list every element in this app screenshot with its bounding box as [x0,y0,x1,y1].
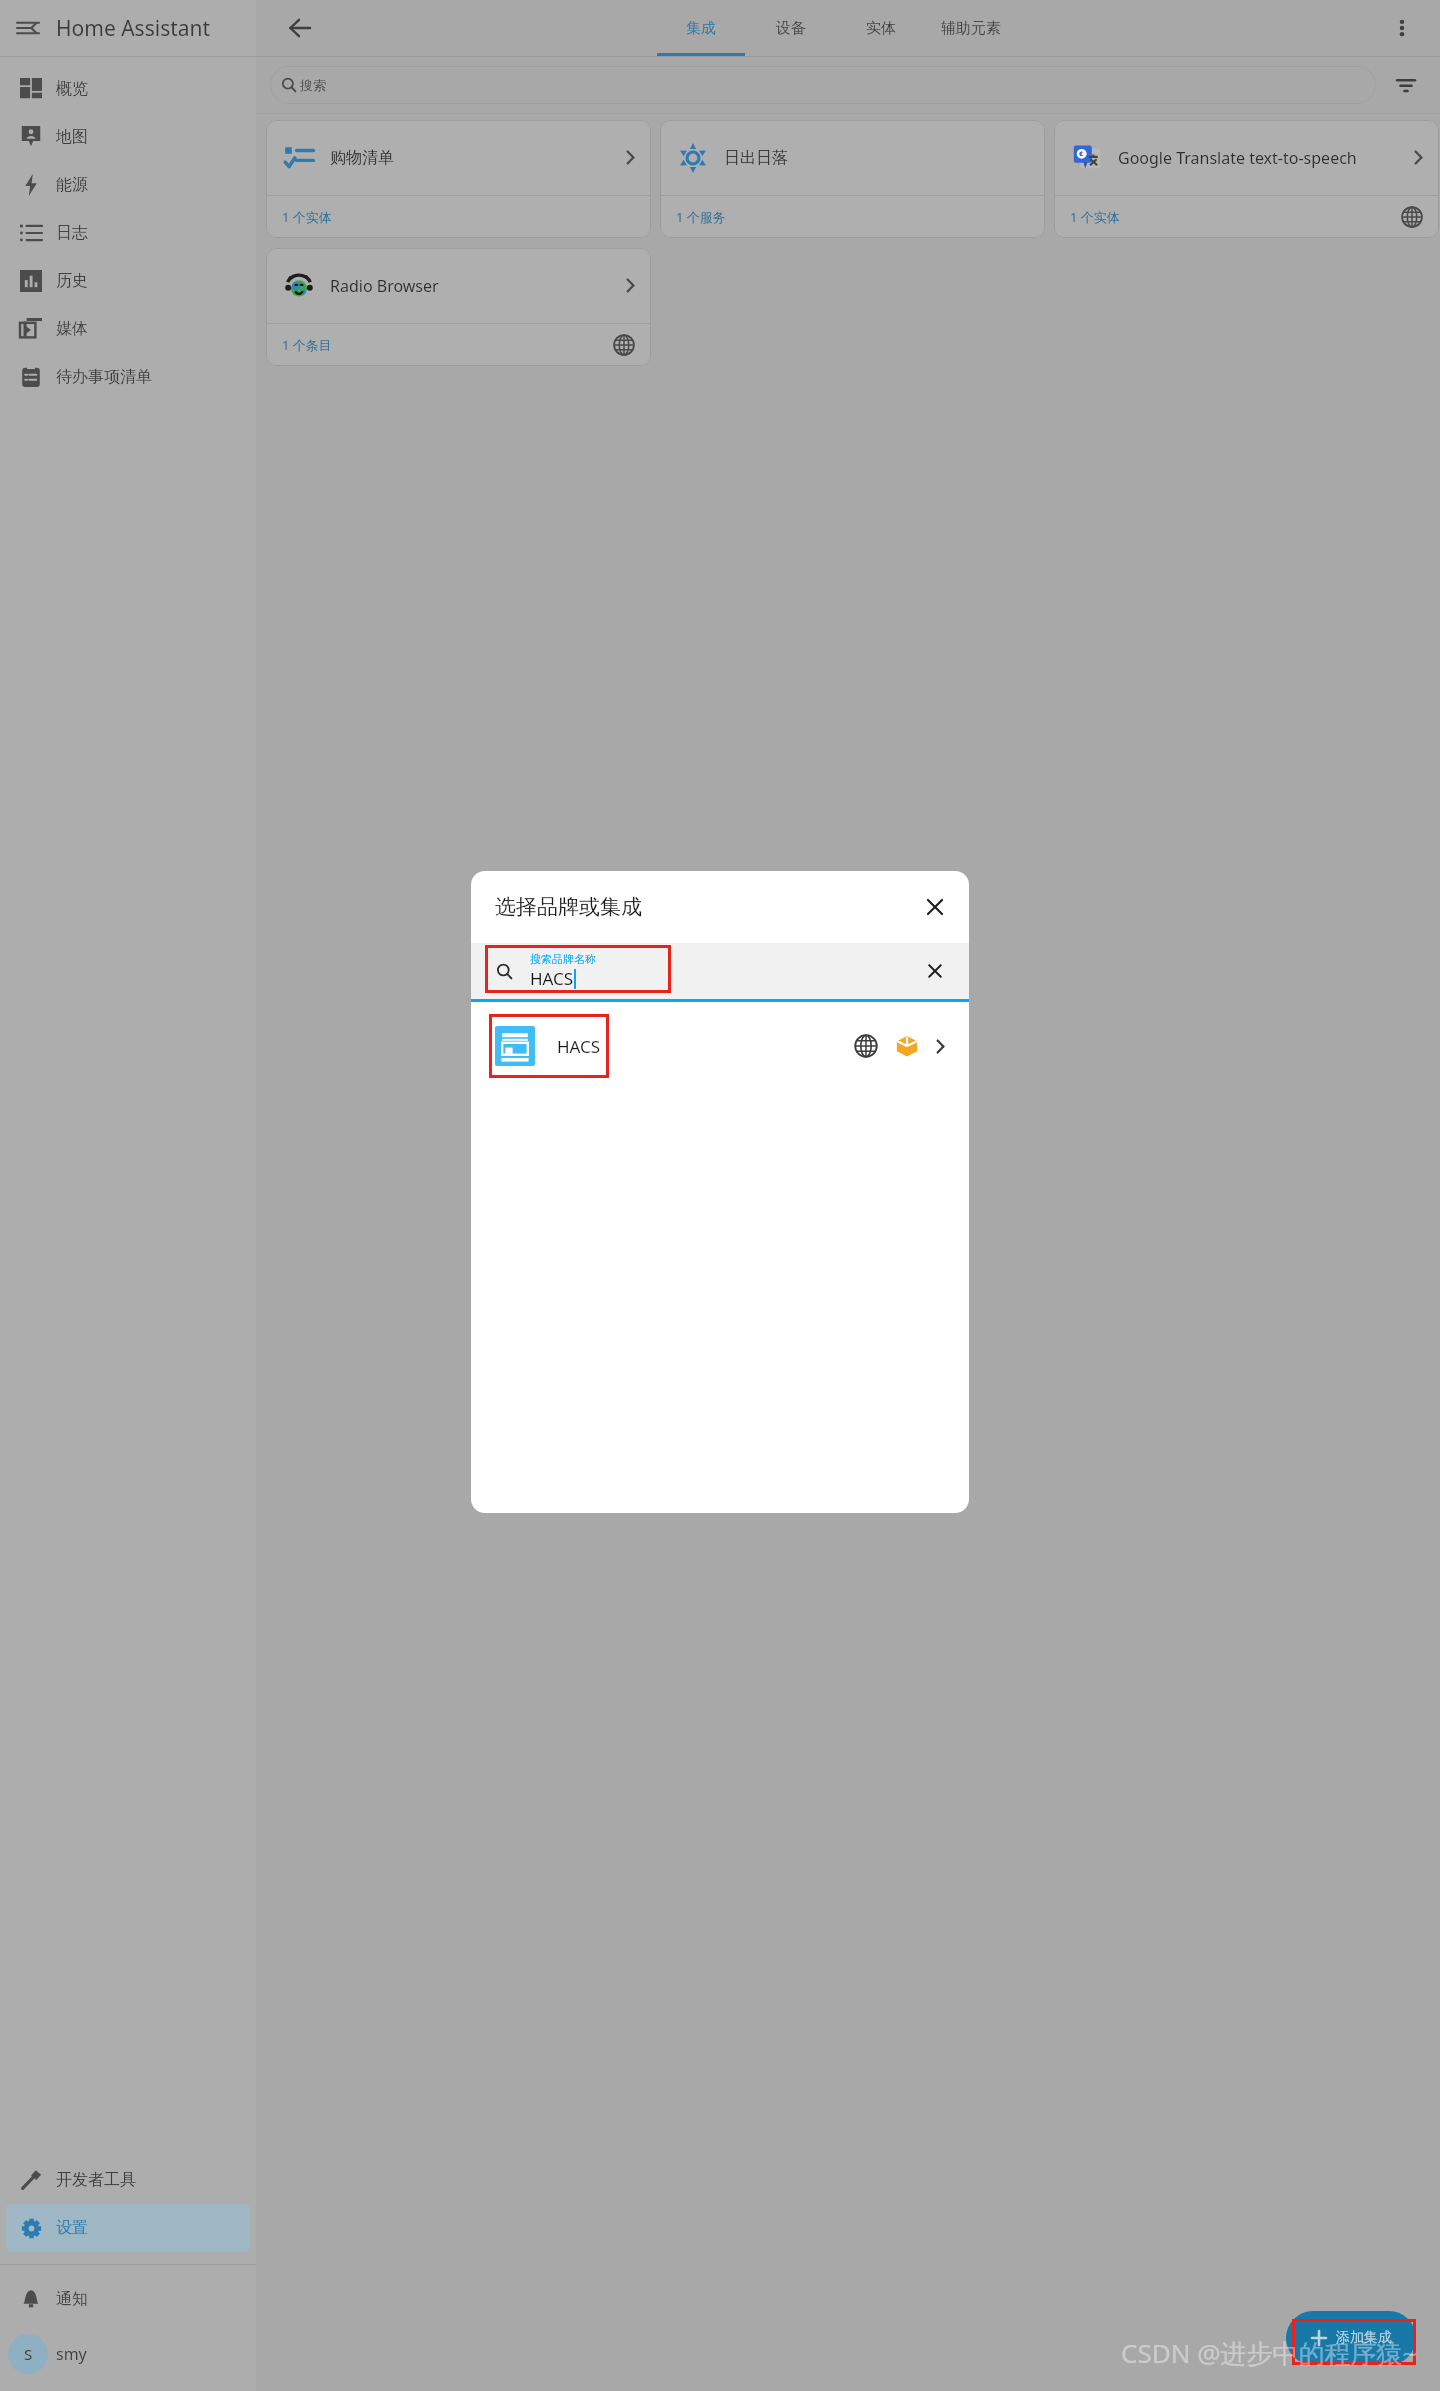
button[interactable]: Collapse sidebar [0,0,256,56]
staticText: S [24,2344,33,2364]
staticText: CSDN @进步中的程序猿~ [1121,2335,1418,2371]
button[interactable]: 待办事项清单 [6,353,250,401]
button[interactable]: 搜索品牌名称 [471,943,969,999]
staticText: 设备 [776,19,806,38]
button[interactable]: Google Translate text-to-speech [1054,120,1439,238]
staticText: HACS [557,1035,601,1058]
button[interactable]: S [0,2323,256,2385]
staticText: 辅助元素 [941,19,1001,38]
staticText: 搜索品牌名称 [530,952,596,966]
button[interactable]: 通知 [6,2275,250,2323]
staticText: 能源 [56,175,88,195]
button[interactable]: 地图 [6,113,250,161]
button[interactable]: Close [913,885,957,929]
staticText: HACS [530,967,574,990]
button[interactable]: Filter [1386,65,1426,105]
staticText: 待办事项清单 [56,367,152,387]
button[interactable]: Clear search [913,949,957,993]
staticText: 1 个服务 [676,208,726,226]
button[interactable]: 搜索 [270,66,1376,104]
staticText: 购物清单 [330,148,626,168]
staticText: 媒体 [56,319,88,339]
staticText: 搜索 [300,77,326,93]
button[interactable]: 集成 [656,0,746,56]
staticText: 历史 [56,271,88,291]
button[interactable]: 历史 [6,257,250,305]
button[interactable]: 日志 [6,209,250,257]
staticText: Google Translate text-to-speech [1118,147,1414,169]
button[interactable]: 购物清单 [266,120,651,238]
staticText: 实体 [866,19,896,38]
staticText: Home Assistant [56,14,211,43]
staticText: 1 个实体 [1070,208,1120,226]
button[interactable]: 开发者工具 [6,2156,250,2204]
staticText: 通知 [56,2289,88,2309]
button[interactable]: 概览 [6,65,250,113]
staticText: smy [56,2343,87,2365]
button[interactable]: 日出日落 [660,120,1045,238]
button[interactable]: 辅助元素 [926,0,1016,56]
button[interactable]: 媒体 [6,305,250,353]
button[interactable]: 能源 [6,161,250,209]
staticText: 开发者工具 [56,2170,136,2190]
button[interactable]: Radio Browser [266,248,651,366]
staticText: 1 个条目 [282,336,332,354]
button[interactable]: 实体 [836,0,926,56]
staticText: 选择品牌或集成 [495,894,642,920]
button[interactable]: 设置 [6,2204,250,2252]
staticText: 1 个实体 [282,208,332,226]
staticText: 日出日落 [724,148,1029,168]
button[interactable]: 设备 [746,0,836,56]
staticText: Radio Browser [330,275,626,297]
staticText: 日志 [56,223,88,243]
staticText: 地图 [56,127,88,147]
button[interactable]: HACS [471,1014,969,1078]
staticText: 集成 [686,19,716,38]
button[interactable]: Back [272,0,328,56]
staticText: 设置 [56,2218,88,2238]
staticText: 概览 [56,79,88,99]
other: Collapse sidebar [0,0,56,56]
button[interactable]: More options [1378,4,1426,52]
staticText: 添加集成 [1336,2329,1392,2347]
button[interactable]: 添加集成 [1286,2311,1416,2365]
